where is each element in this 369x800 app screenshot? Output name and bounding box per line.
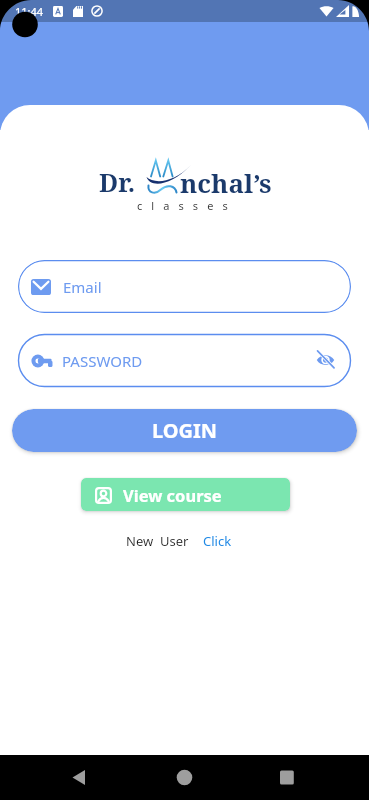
button[interactable]: View course <box>81 478 290 511</box>
staticText: PASSWORD <box>62 351 143 371</box>
staticText: Dr. <box>99 165 136 199</box>
staticText: New User <box>126 532 189 550</box>
staticText: View course <box>123 484 222 506</box>
button[interactable]: Click <box>203 532 232 550</box>
staticText: Email <box>63 277 102 297</box>
staticText: LOGIN <box>152 417 218 444</box>
staticText: c l a s s e s <box>137 198 231 213</box>
staticText: Click <box>203 532 232 550</box>
button[interactable]: Show password <box>313 347 337 371</box>
staticText: 11:44 <box>15 4 44 19</box>
button[interactable]: LOGIN <box>12 409 357 452</box>
button[interactable]: PASSWORD <box>18 334 351 387</box>
button[interactable]: Email <box>18 260 351 313</box>
staticText: nchal’s <box>180 165 272 200</box>
